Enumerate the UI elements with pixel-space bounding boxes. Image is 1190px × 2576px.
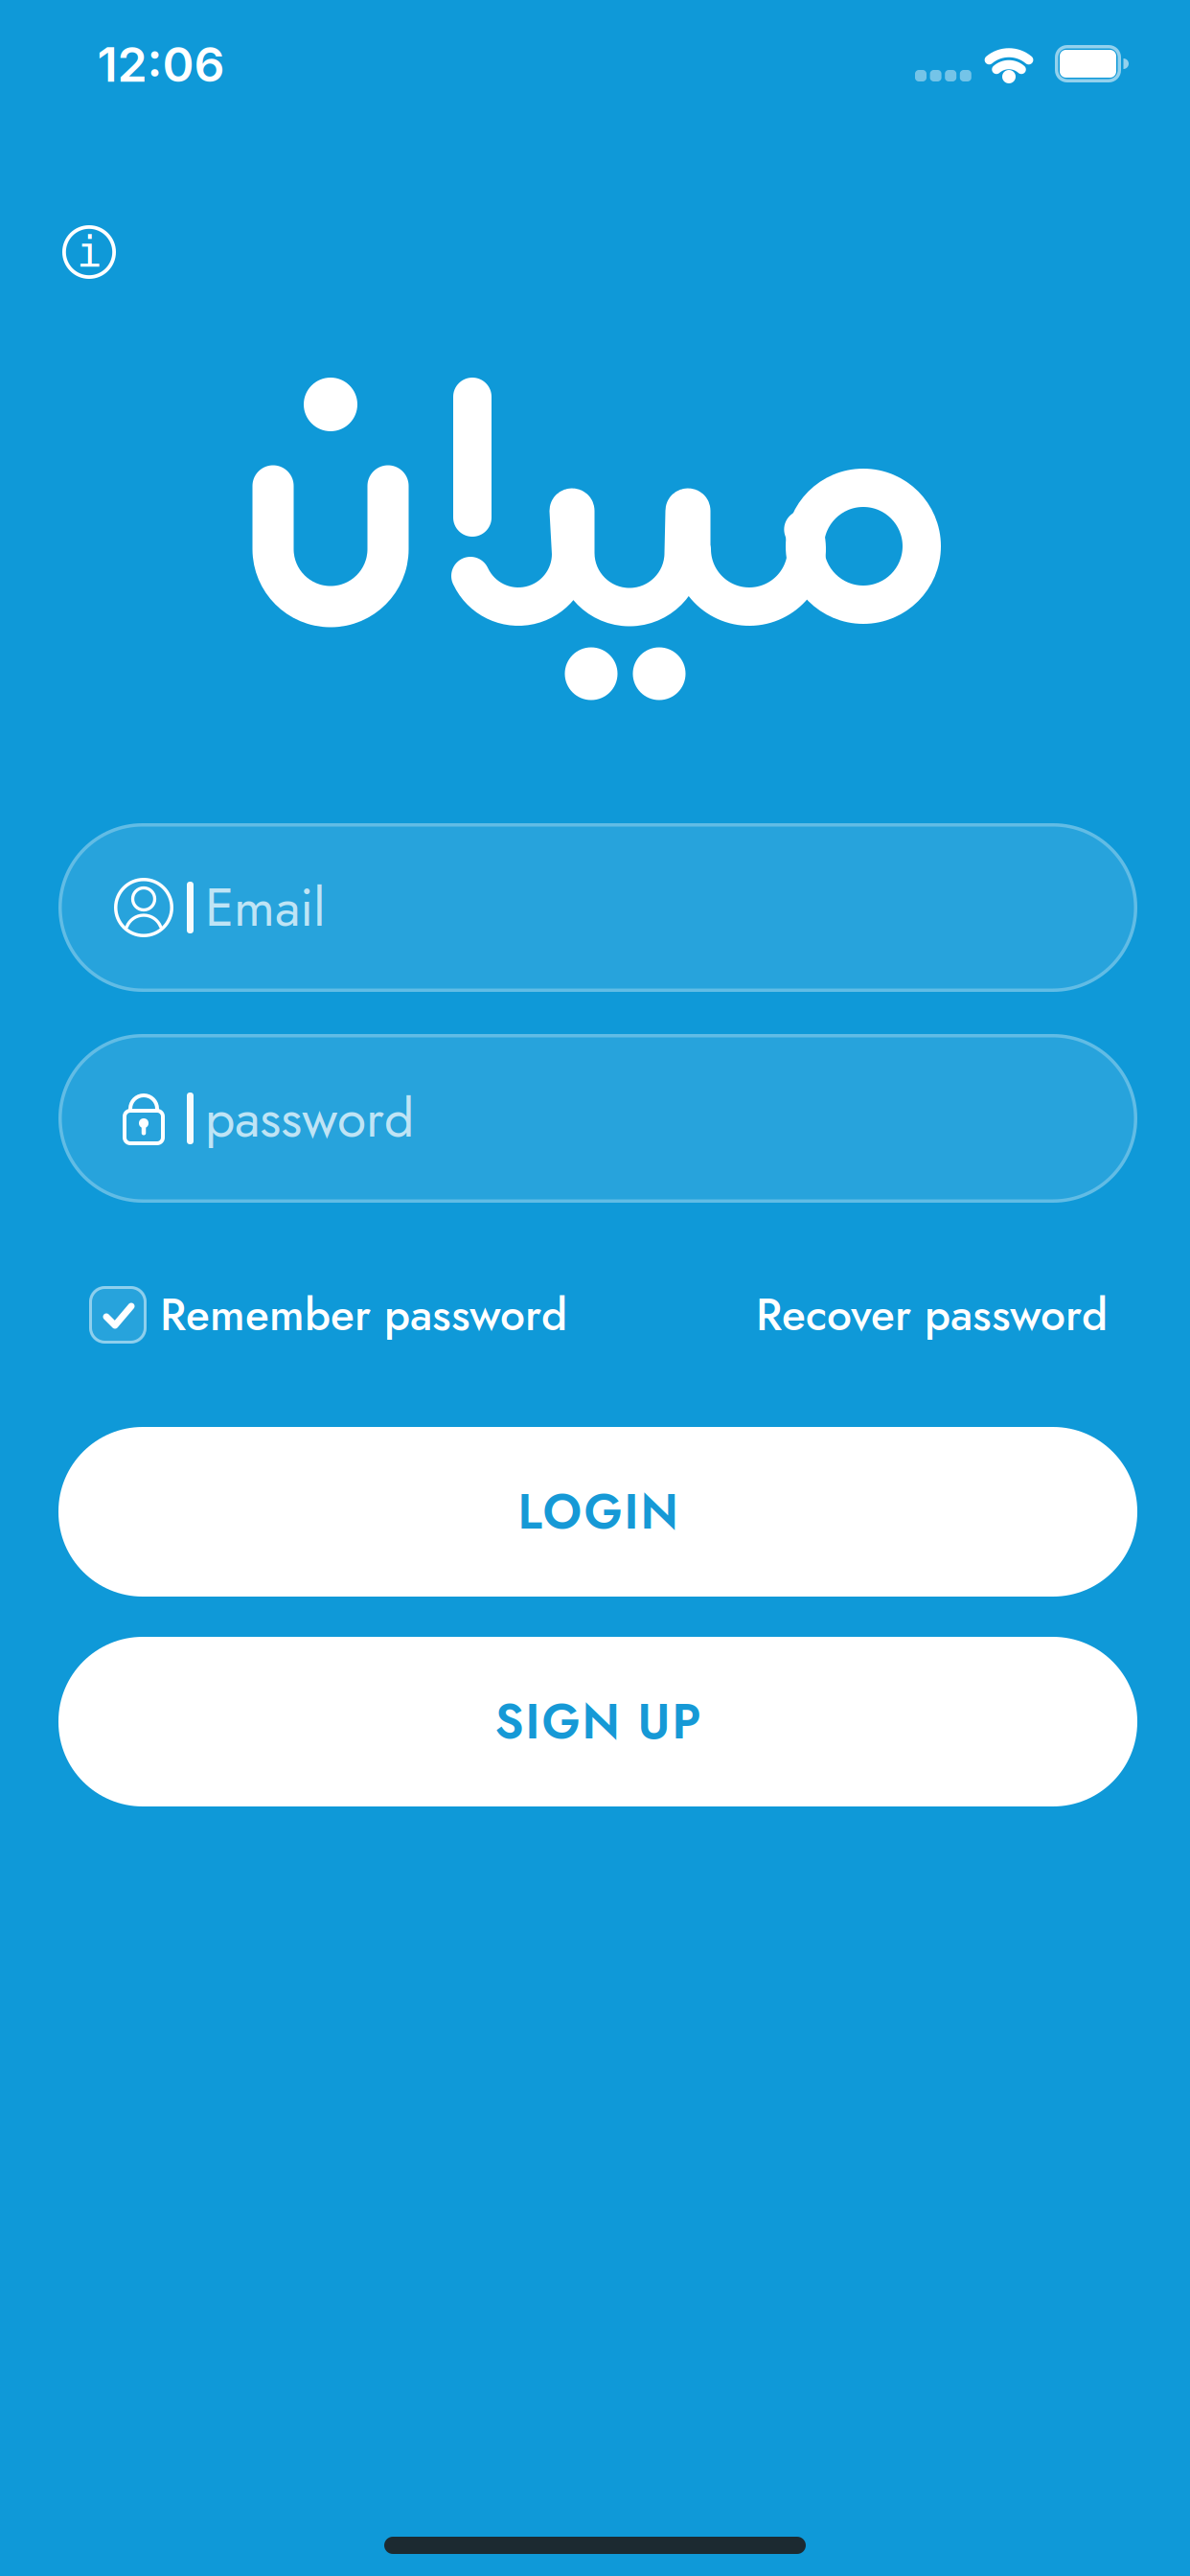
button[interactable]: i bbox=[62, 225, 116, 279]
button[interactable]: password bbox=[58, 1034, 1137, 1203]
staticText: password bbox=[205, 1080, 414, 1157]
button[interactable]: Recover password bbox=[756, 1283, 1108, 1347]
staticText: Recover password bbox=[756, 1283, 1108, 1347]
staticText: 12:06 bbox=[97, 35, 225, 93]
button[interactable]: SIGN UP bbox=[58, 1637, 1137, 1806]
button[interactable]: LOGIN bbox=[58, 1427, 1137, 1597]
staticText: Email bbox=[205, 869, 326, 946]
staticText: SIGN UP bbox=[495, 1687, 701, 1756]
button[interactable]: Email bbox=[58, 823, 1137, 992]
button[interactable]: Remember password bbox=[89, 1283, 567, 1347]
staticText: i bbox=[77, 228, 102, 277]
staticText: LOGIN bbox=[518, 1477, 678, 1546]
staticText: Remember password bbox=[160, 1283, 567, 1347]
